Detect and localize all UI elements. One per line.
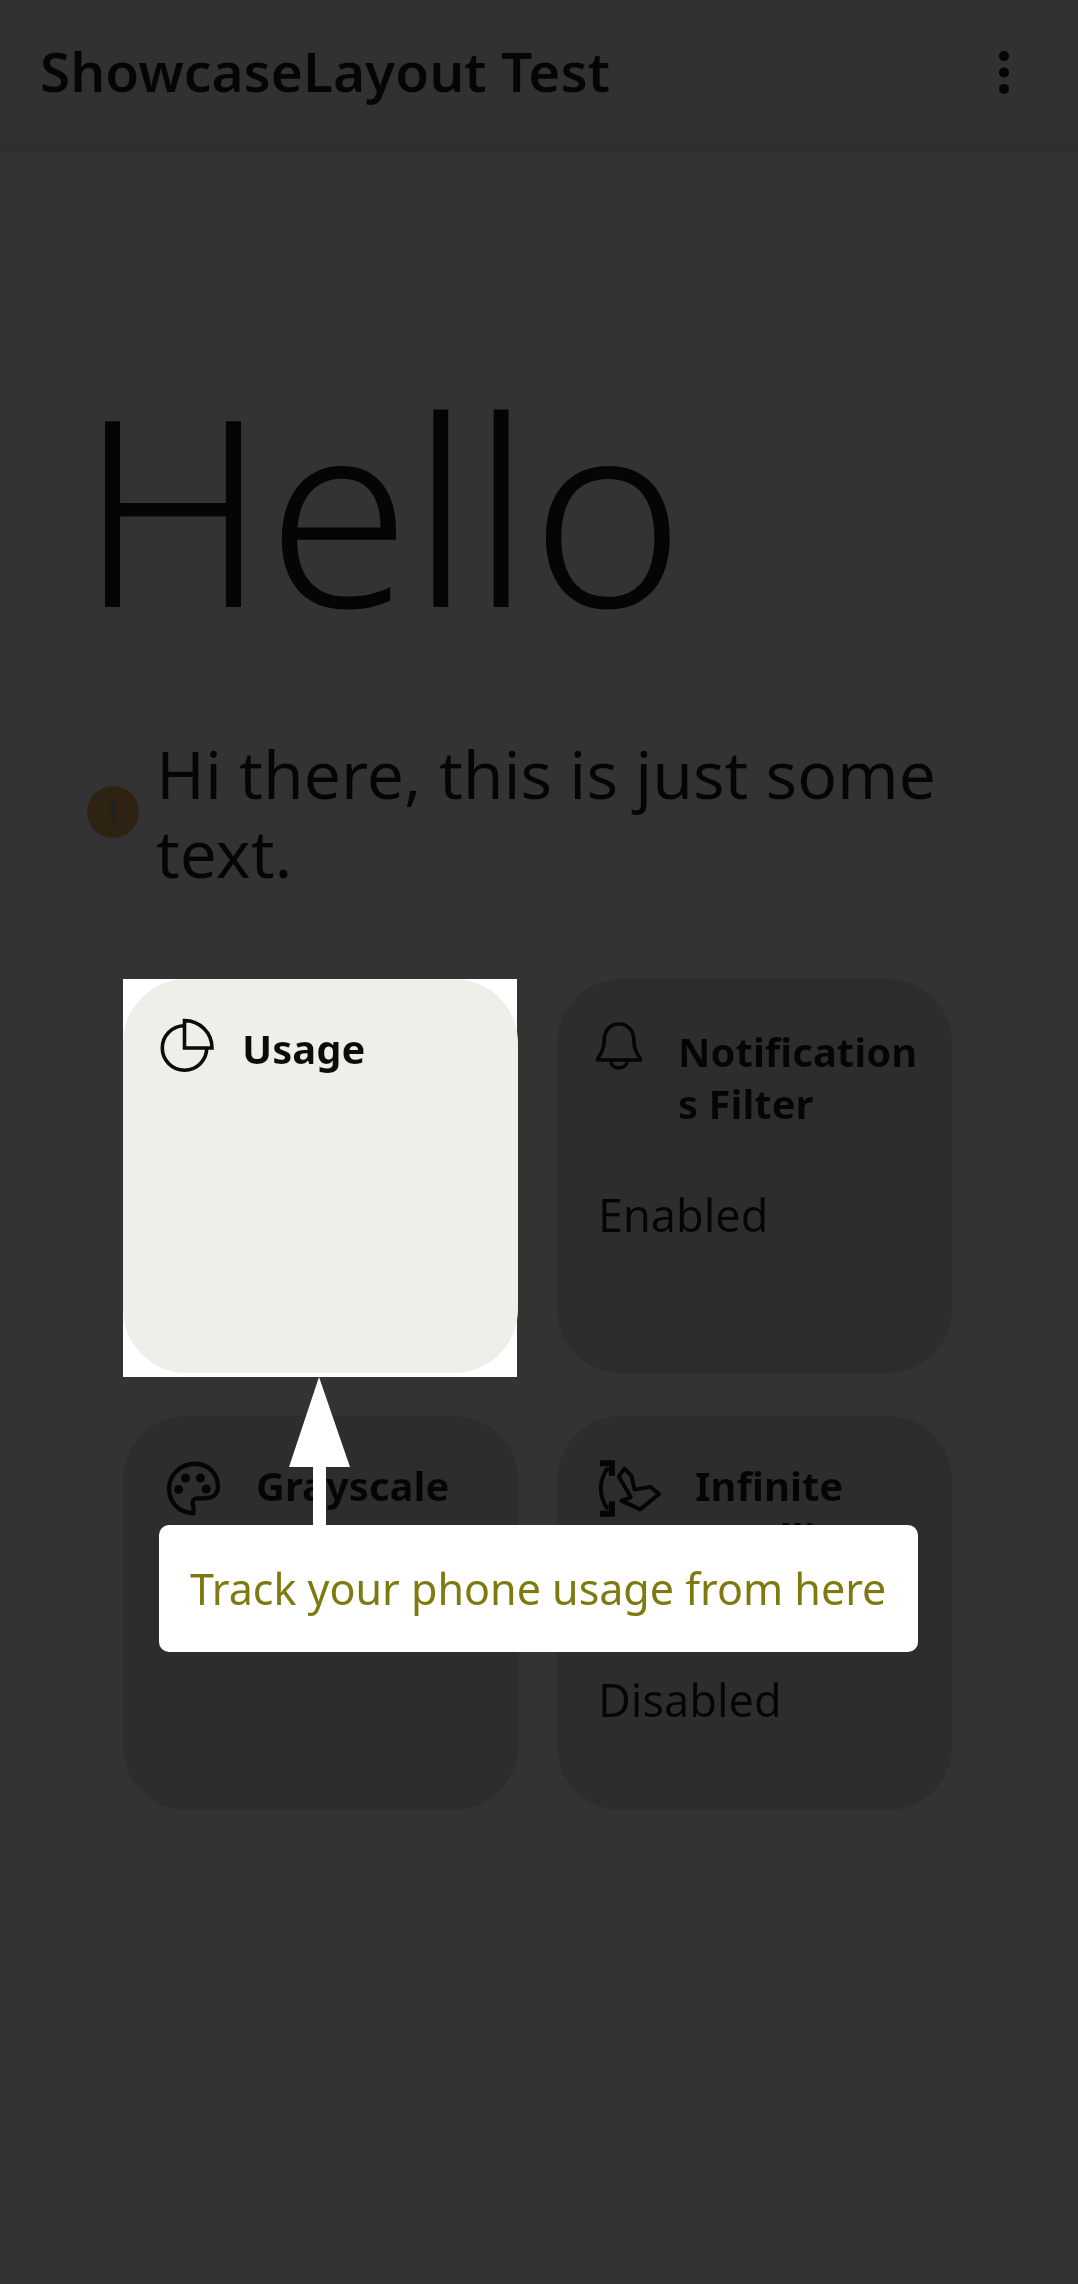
staticText: Disabled — [164, 1572, 348, 1633]
staticText: ShowcaseLayout Test — [40, 33, 610, 108]
button[interactable]: Grayscale — [123, 1416, 518, 1810]
staticText: Usage — [242, 1021, 486, 1075]
button[interactable]: More options — [954, 23, 1054, 123]
button[interactable]: Info — [87, 786, 139, 838]
staticText: Enabled — [598, 1184, 769, 1245]
staticText: Usage — [242, 1021, 486, 1075]
button[interactable]: Usage — [123, 979, 518, 1373]
staticText: Disabled — [598, 1669, 782, 1730]
button[interactable]: Notifications Filter — [557, 979, 952, 1373]
button[interactable]: Infinite Scrolling — [557, 1416, 952, 1810]
button[interactable]: Track your phone usage from here — [159, 1525, 918, 1652]
staticText: Track your phone usage from here — [190, 1559, 887, 1618]
staticText: Grayscale — [256, 1458, 500, 1512]
staticText: Hello — [79, 329, 685, 683]
staticText: Notifications Filter — [678, 1024, 922, 1131]
staticText: Infinite Scrolling — [695, 1458, 939, 1565]
staticText: Hi there, this is just some text. — [156, 728, 946, 897]
button[interactable]: Usage — [123, 979, 518, 1373]
